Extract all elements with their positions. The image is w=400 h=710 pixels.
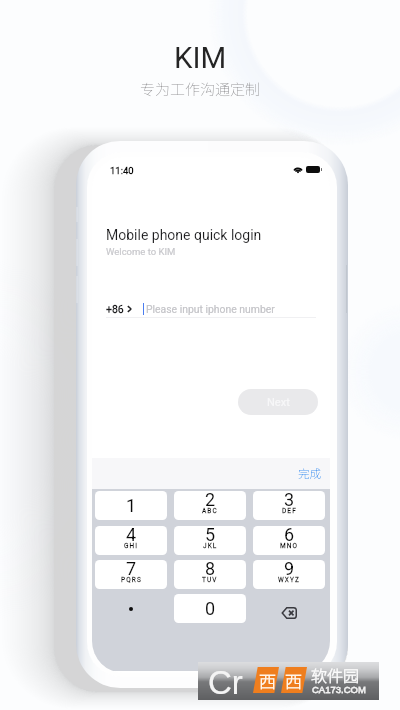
button[interactable]: 9 xyxy=(253,560,325,589)
button[interactable]: 完成 xyxy=(288,460,330,487)
staticText: 专为工作沟通定制 xyxy=(140,78,261,100)
staticText: 3 xyxy=(284,491,295,510)
staticText: 6 xyxy=(284,526,295,545)
staticText: CA173.COM xyxy=(312,684,366,695)
staticText: 7 xyxy=(126,560,137,579)
staticText: Cr xyxy=(208,664,243,701)
button[interactable]: Next xyxy=(238,389,318,415)
staticText: 西 xyxy=(285,668,302,690)
staticText: 11:40 xyxy=(110,165,134,176)
staticText: Next xyxy=(267,396,290,409)
button[interactable]: 6 xyxy=(253,526,325,555)
button[interactable]: 8 xyxy=(174,560,246,589)
staticText: WXYZ xyxy=(278,576,301,584)
staticText: GHI xyxy=(124,542,139,550)
button[interactable]: 0 xyxy=(174,594,246,623)
staticText: 0 xyxy=(205,598,216,619)
staticText: 西 xyxy=(259,668,276,690)
staticText: 软件园 xyxy=(311,663,360,686)
staticText: 2 xyxy=(205,491,216,510)
staticText: Please input iphone number xyxy=(146,303,275,315)
staticText: +86 xyxy=(106,303,124,315)
button[interactable]: 3 xyxy=(253,491,325,520)
button[interactable]: Backspace xyxy=(253,594,325,623)
button[interactable]: 1 xyxy=(95,491,167,520)
staticText: Welcome to KIM xyxy=(106,246,176,257)
staticText: ABC xyxy=(202,507,218,515)
staticText: JKL xyxy=(203,542,218,550)
staticText: 5 xyxy=(205,526,216,545)
staticText: PQRS xyxy=(121,576,142,584)
staticText: TUV xyxy=(202,576,218,584)
button[interactable]: 4 xyxy=(95,526,167,555)
staticText: KIM xyxy=(174,41,227,76)
staticText: DEF xyxy=(282,507,297,515)
staticText: Mobile phone quick login xyxy=(106,227,262,243)
staticText: 4 xyxy=(126,526,137,545)
button[interactable]: 5 xyxy=(174,526,246,555)
staticText: 8 xyxy=(205,560,216,579)
button[interactable]: 2 xyxy=(174,491,246,520)
button[interactable]: Decimal point xyxy=(95,594,167,623)
staticText: 1 xyxy=(126,495,137,516)
staticText: 9 xyxy=(284,560,295,579)
button[interactable]: Country code +86 xyxy=(106,303,132,315)
staticText: MNO xyxy=(280,542,299,550)
button[interactable]: 7 xyxy=(95,560,167,589)
staticText: 完成 xyxy=(298,465,321,482)
